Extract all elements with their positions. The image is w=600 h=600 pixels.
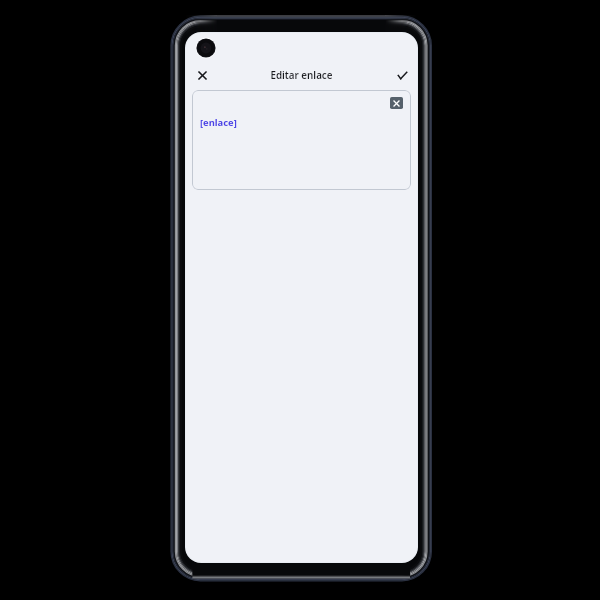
button[interactable]: Guardar bbox=[391, 64, 413, 86]
staticText: [enlace] bbox=[200, 116, 237, 129]
button[interactable]: Cerrar bbox=[191, 64, 213, 86]
staticText: Editar enlace bbox=[270, 69, 333, 82]
button[interactable]: Quitar enlace bbox=[390, 97, 403, 109]
button[interactable]: Campo de enlace bbox=[192, 90, 411, 190]
